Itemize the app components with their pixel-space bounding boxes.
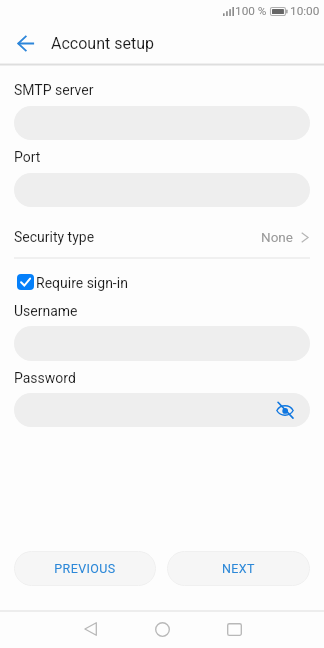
button[interactable]: Require sign-in bbox=[0, 269, 324, 295]
staticText: 100 % bbox=[235, 4, 267, 18]
staticText: SMTP server bbox=[14, 82, 94, 98]
button[interactable]: PREVIOUS bbox=[14, 551, 156, 586]
button[interactable]: Show password bbox=[272, 397, 298, 423]
staticText: Security type bbox=[14, 229, 95, 245]
staticText: PREVIOUS bbox=[54, 561, 116, 576]
staticText: 10:00 bbox=[290, 4, 320, 18]
button[interactable]: NEXT bbox=[167, 551, 310, 586]
staticText: NEXT bbox=[222, 561, 255, 576]
button[interactable]: Home bbox=[126, 611, 198, 647]
staticText: Username bbox=[14, 303, 78, 319]
button[interactable]: Show password bbox=[14, 393, 310, 427]
staticText: Port bbox=[14, 149, 41, 165]
button[interactable]: Recent apps bbox=[198, 611, 270, 647]
staticText: Require sign-in bbox=[36, 275, 128, 291]
staticText: Account setup bbox=[51, 34, 154, 53]
button[interactable]: Back bbox=[54, 611, 126, 647]
button[interactable]: Back bbox=[9, 26, 43, 60]
button[interactable]: Security type bbox=[0, 222, 324, 252]
staticText: None bbox=[261, 229, 293, 245]
staticText: Password bbox=[14, 370, 76, 386]
